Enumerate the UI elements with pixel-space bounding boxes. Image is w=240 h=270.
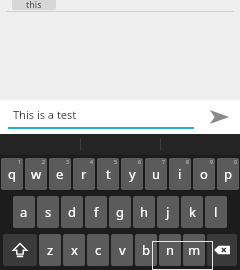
- button[interactable]: this: [12, 0, 56, 10]
- button[interactable]: k: [181, 196, 203, 228]
- staticText: d: [68, 203, 76, 221]
- button[interactable]: c: [87, 234, 109, 266]
- staticText: a: [20, 203, 28, 221]
- staticText: b: [142, 241, 150, 259]
- staticText: i: [178, 165, 182, 183]
- staticText: 7: [162, 159, 165, 166]
- button[interactable]: o: [193, 158, 215, 190]
- staticText: s: [45, 203, 52, 221]
- button[interactable]: h: [133, 196, 155, 228]
- staticText: m: [188, 241, 201, 259]
- staticText: t: [106, 165, 111, 183]
- staticText: f: [94, 203, 99, 221]
- button[interactable]: u: [145, 158, 167, 190]
- button[interactable]: b: [135, 234, 157, 266]
- button[interactable]: n: [159, 234, 181, 266]
- staticText: 6: [138, 159, 141, 166]
- staticText: g: [116, 203, 124, 221]
- button[interactable]: f: [85, 196, 107, 228]
- staticText: y: [129, 165, 136, 183]
- staticText: u: [152, 165, 161, 183]
- button[interactable]: s: [37, 196, 59, 228]
- button[interactable]: i: [169, 158, 191, 190]
- staticText: o: [200, 165, 208, 183]
- staticText: l: [214, 203, 218, 221]
- button[interactable]: w: [25, 158, 47, 190]
- staticText: r: [81, 165, 87, 183]
- staticText: 1: [18, 159, 21, 166]
- staticText: e: [56, 165, 64, 183]
- button[interactable]: d: [61, 196, 83, 228]
- staticText: 0: [234, 159, 237, 166]
- button[interactable]: a: [13, 196, 35, 228]
- button[interactable]: x: [63, 234, 85, 266]
- staticText: 9: [210, 159, 213, 166]
- button[interactable]: Backspace: [207, 234, 237, 266]
- staticText: 4: [90, 159, 93, 166]
- button[interactable]: e: [49, 158, 71, 190]
- button[interactable]: g: [109, 196, 131, 228]
- staticText: x: [71, 241, 78, 259]
- button[interactable]: This is a test: [8, 100, 194, 134]
- button[interactable]: v: [111, 234, 133, 266]
- button[interactable]: Send: [204, 102, 234, 132]
- staticText: z: [47, 241, 54, 259]
- staticText: h: [140, 203, 149, 221]
- staticText: v: [119, 241, 126, 259]
- staticText: p: [224, 165, 232, 183]
- staticText: j: [166, 203, 170, 221]
- button[interactable]: q: [1, 158, 23, 190]
- staticText: 8: [186, 159, 189, 166]
- staticText: c: [95, 241, 102, 259]
- button[interactable]: l: [205, 196, 227, 228]
- staticText: this: [26, 0, 42, 10]
- button[interactable]: m: [183, 234, 205, 266]
- staticText: This is a test: [13, 107, 77, 122]
- button[interactable]: r: [73, 158, 95, 190]
- button[interactable]: p: [217, 158, 239, 190]
- button[interactable]: t: [97, 158, 119, 190]
- button[interactable]: j: [157, 196, 179, 228]
- button[interactable]: Shift: [3, 234, 37, 266]
- staticText: n: [166, 241, 175, 259]
- staticText: q: [8, 165, 16, 183]
- staticText: k: [189, 203, 196, 221]
- button[interactable]: z: [39, 234, 61, 266]
- button[interactable]: y: [121, 158, 143, 190]
- staticText: 3: [66, 159, 69, 166]
- staticText: 2: [42, 159, 45, 166]
- staticText: 5: [114, 159, 117, 166]
- staticText: w: [31, 165, 42, 183]
